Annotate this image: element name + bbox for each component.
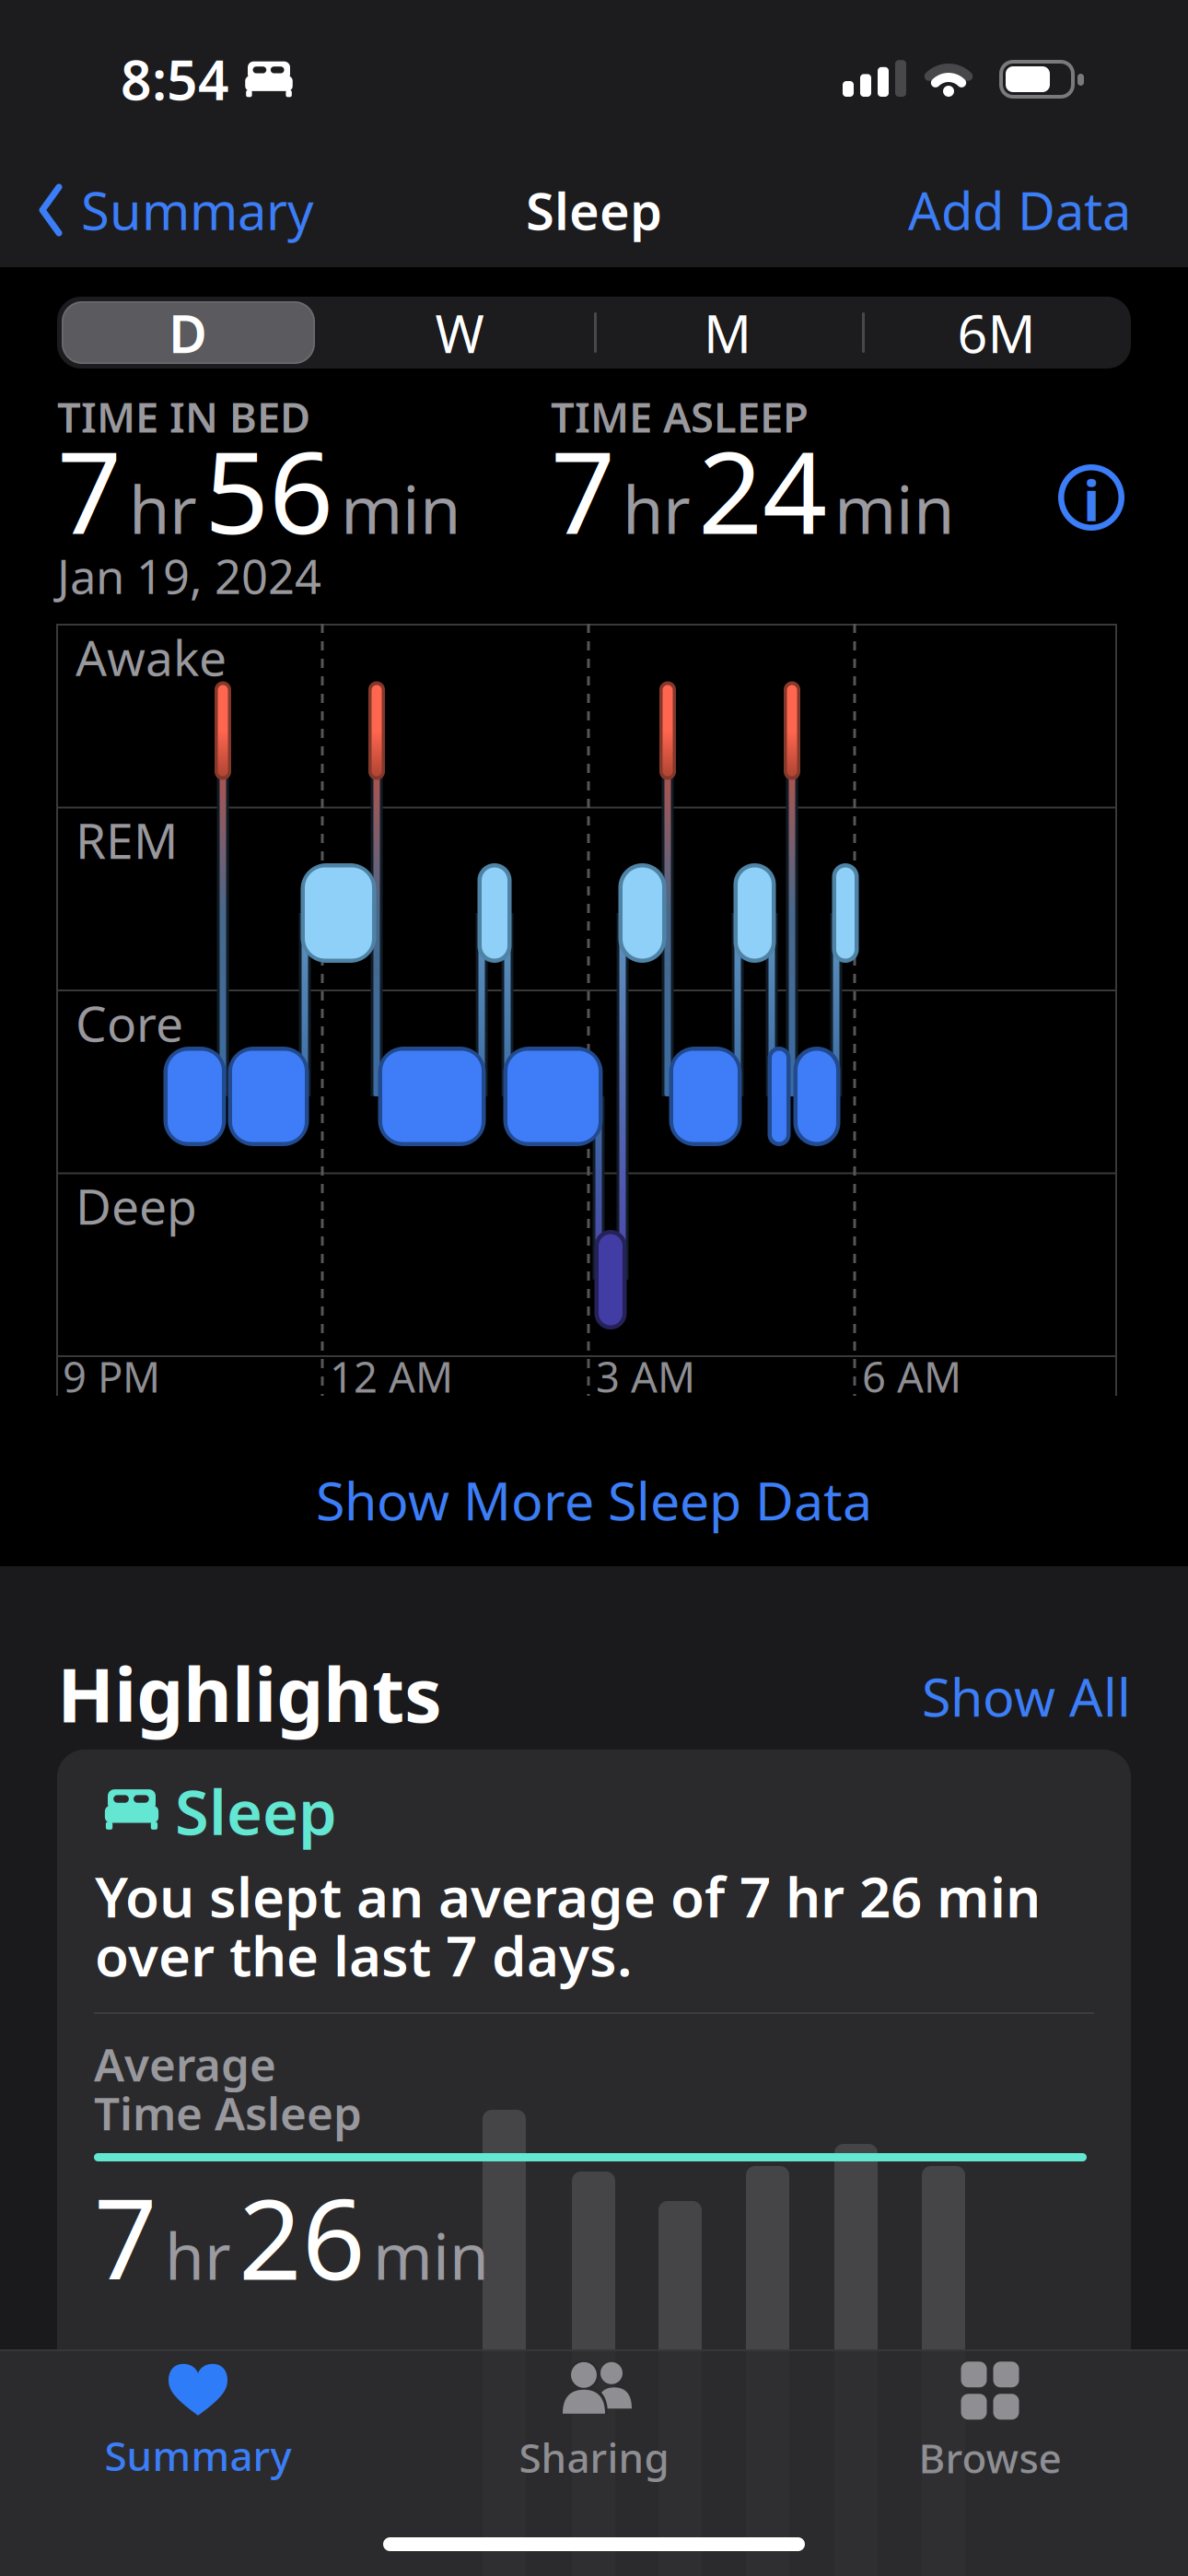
staticText: Sharing [519, 2430, 669, 2484]
staticText: 7 [94, 2164, 157, 2310]
staticText: hr [623, 464, 691, 552]
button[interactable] [62, 301, 315, 364]
staticText: i [1083, 462, 1100, 537]
button[interactable]: M [599, 300, 856, 365]
staticText: TIME IN BED [57, 389, 310, 444]
staticText: M [704, 297, 751, 368]
button[interactable]: Summary [39, 176, 407, 244]
staticText: Sleep [175, 1770, 337, 1852]
staticText: TIME ASLEEP [551, 389, 809, 444]
button[interactable]: i [1054, 461, 1128, 534]
button[interactable]: Show More Sleep Data [134, 1463, 1054, 1537]
staticText: min [373, 2213, 489, 2297]
staticText: 12 AM [330, 1349, 453, 1404]
staticText: 7 [57, 415, 122, 565]
staticText: 3 AM [596, 1349, 695, 1404]
staticText: 6M [957, 297, 1036, 368]
staticText: D [169, 297, 207, 368]
button[interactable]: Summary [32, 2340, 364, 2506]
staticText: Summary [81, 176, 314, 244]
staticText: Deep [76, 1173, 197, 1238]
staticText: hr [129, 464, 197, 552]
staticText: Show More Sleep Data [316, 1465, 872, 1535]
staticText: hr [165, 2213, 231, 2297]
staticText: Sleep [526, 176, 662, 244]
staticText: Highlights [57, 1644, 442, 1743]
staticText: 8:54 [121, 43, 229, 115]
button[interactable]: Sharing [428, 2340, 760, 2506]
button[interactable] [57, 1750, 1131, 2450]
staticText: Jan 19, 2024 [57, 545, 321, 607]
staticText: 56 [204, 415, 333, 565]
staticText: 9 PM [63, 1349, 160, 1404]
staticText: Awake [76, 624, 227, 690]
button[interactable]: Show All [855, 1661, 1131, 1731]
staticText: Browse [919, 2431, 1061, 2485]
staticText: 7 [551, 415, 615, 565]
staticText: over the last 7 days. [95, 1918, 633, 1992]
staticText: min [834, 464, 954, 552]
button[interactable]: W [331, 300, 588, 365]
staticText: W [435, 297, 484, 368]
staticText: 6 AM [862, 1349, 961, 1404]
staticText: Show All [922, 1661, 1131, 1731]
staticText: REM [76, 807, 178, 872]
staticText: Average [94, 2034, 276, 2094]
button[interactable]: Browse [824, 2340, 1156, 2506]
staticText: Time Asleep [94, 2082, 362, 2143]
staticText: 26 [239, 2164, 366, 2310]
button[interactable]: Add Data [809, 176, 1131, 244]
staticText: Add Data [908, 176, 1131, 244]
staticText: Summary [105, 2428, 291, 2482]
staticText: min [341, 464, 460, 552]
staticText: You slept an average of 7 hr 26 min [95, 1859, 1041, 1933]
staticText: 24 [698, 415, 827, 565]
staticText: Core [76, 990, 183, 1055]
button[interactable]: 6M [868, 300, 1125, 365]
